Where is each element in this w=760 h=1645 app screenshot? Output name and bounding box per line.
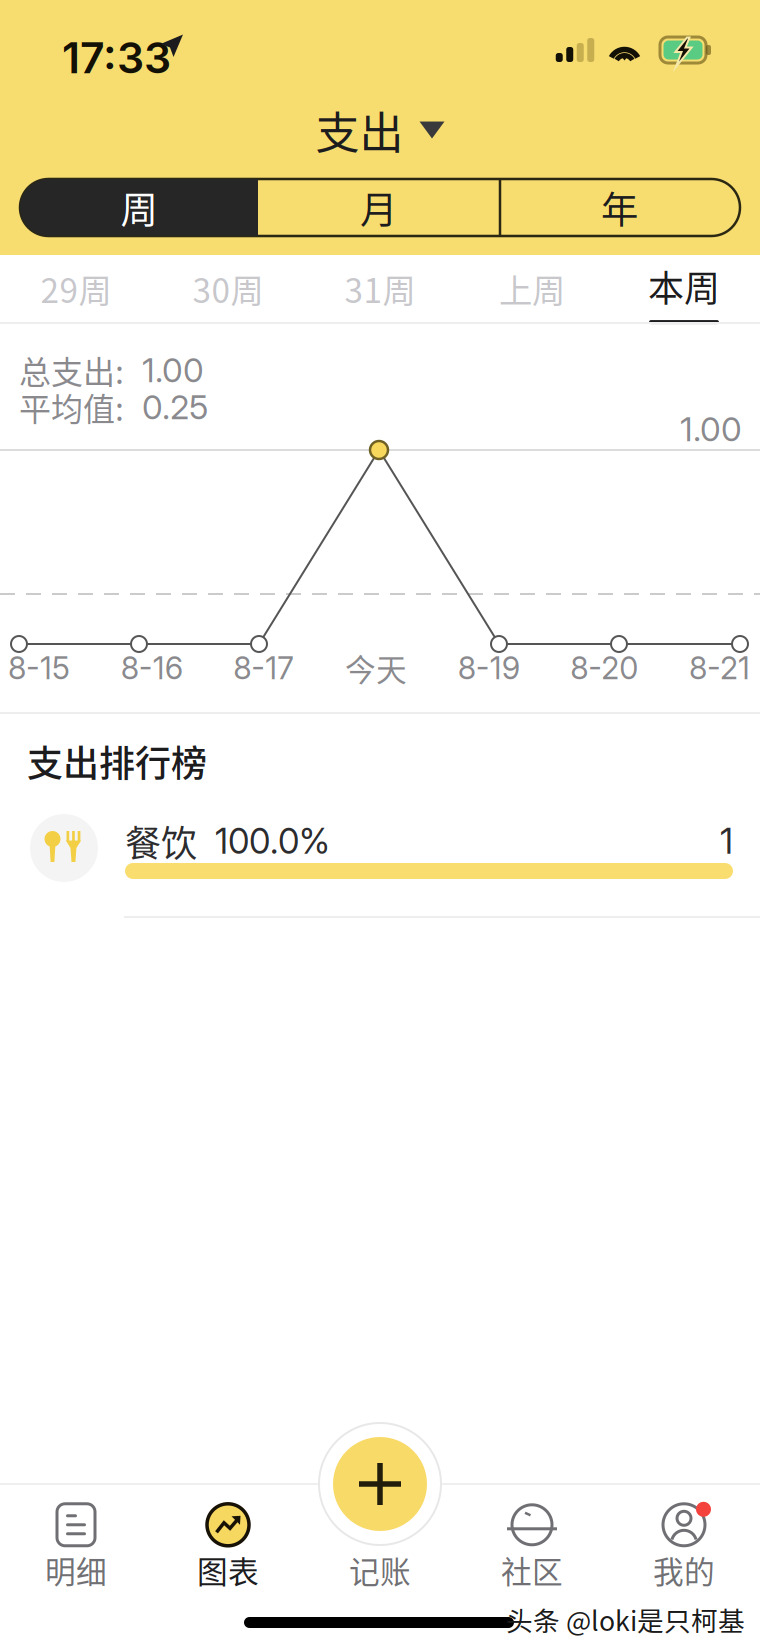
- button[interactable]: 上周: [456, 255, 608, 322]
- staticText: 本周: [648, 260, 720, 312]
- staticText: 社区: [501, 1548, 563, 1592]
- staticText: 8-21: [689, 649, 750, 686]
- button[interactable]: 社区: [456, 1492, 608, 1602]
- button[interactable]: 餐饮: [0, 790, 760, 908]
- staticText: 8-17: [233, 649, 294, 686]
- staticText: 头条 @loki是只柯基: [506, 1600, 745, 1639]
- staticText: 1: [720, 820, 733, 862]
- staticText: 平均值:: [19, 384, 124, 430]
- staticText: 0.25: [124, 387, 208, 427]
- staticText: 上周: [499, 264, 565, 313]
- staticText: 图表: [197, 1548, 259, 1592]
- staticText: 8-20: [570, 649, 638, 686]
- button[interactable]: 本周: [608, 255, 760, 322]
- staticText: 周: [120, 180, 157, 235]
- staticText: 月: [360, 180, 397, 235]
- button[interactable]: 周: [20, 179, 258, 236]
- staticText: 记账: [349, 1548, 411, 1592]
- button[interactable]: 年: [499, 179, 740, 236]
- staticText: 总支出:: [19, 347, 124, 393]
- staticText: 1.00: [124, 350, 204, 390]
- button[interactable]: 29周: [0, 255, 152, 322]
- staticText: 我的: [653, 1548, 715, 1592]
- button[interactable]: 图表: [152, 1492, 304, 1602]
- staticText: 31周: [344, 264, 415, 313]
- button[interactable]: 记账: [304, 1492, 456, 1602]
- staticText: 8-19: [458, 649, 520, 686]
- staticText: 100.0%: [197, 820, 330, 862]
- staticText: 支出: [315, 98, 403, 162]
- button[interactable]: 我的: [608, 1492, 760, 1602]
- button[interactable]: 30周: [152, 255, 304, 322]
- staticText: 今天: [345, 646, 407, 690]
- staticText: 支出排行榜: [27, 735, 207, 787]
- button[interactable]: 记账: [318, 1422, 442, 1546]
- staticText: 年: [601, 180, 638, 235]
- staticText: 30周: [192, 264, 263, 313]
- staticText: 17:33: [62, 32, 171, 84]
- staticText: 29周: [40, 264, 111, 313]
- button[interactable]: 31周: [304, 255, 456, 322]
- staticText: 8-15: [8, 649, 70, 686]
- button[interactable]: 月: [258, 179, 499, 236]
- staticText: 餐饮: [125, 815, 197, 867]
- button[interactable]: 支出: [0, 104, 760, 156]
- staticText: 8-16: [121, 649, 183, 686]
- button[interactable]: 明细: [0, 1492, 152, 1602]
- staticText: 明细: [45, 1548, 107, 1592]
- staticText: 1.00: [680, 409, 742, 449]
